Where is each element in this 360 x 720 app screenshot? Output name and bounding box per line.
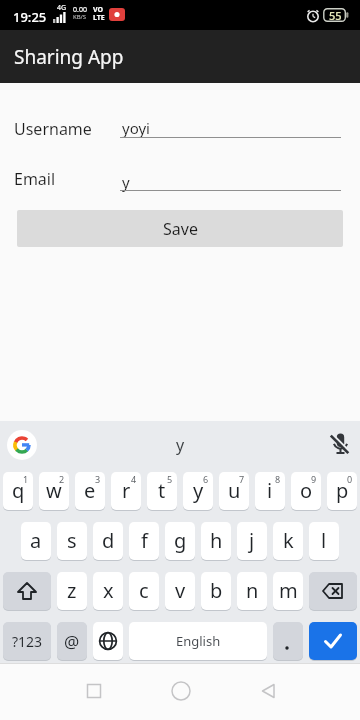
- staticText: c: [139, 577, 149, 604]
- button[interactable]: o: [291, 472, 321, 510]
- button[interactable]: ?123: [3, 622, 51, 660]
- staticText: 3: [95, 473, 101, 485]
- button[interactable]: [309, 572, 357, 610]
- button[interactable]: i: [255, 472, 285, 510]
- button[interactable]: [309, 622, 357, 660]
- button[interactable]: x: [93, 572, 123, 610]
- staticText: 8: [275, 473, 281, 485]
- staticText: 0.00: [73, 5, 87, 15]
- button[interactable]: a: [21, 522, 51, 560]
- staticText: 7: [239, 473, 245, 485]
- staticText: 19:25: [13, 8, 47, 26]
- button[interactable]: j: [237, 522, 267, 560]
- button[interactable]: r: [111, 472, 141, 510]
- button[interactable]: [167, 677, 195, 705]
- staticText: ?123: [12, 632, 43, 651]
- staticText: 0: [347, 473, 353, 485]
- staticText: n: [246, 577, 259, 604]
- button[interactable]: p: [327, 472, 357, 510]
- staticText: q: [12, 477, 25, 504]
- staticText: t: [158, 477, 166, 504]
- button[interactable]: [93, 622, 123, 660]
- button[interactable]: h: [201, 522, 231, 560]
- button[interactable]: [273, 622, 303, 660]
- staticText: i: [267, 477, 273, 504]
- staticText: 4: [131, 473, 137, 485]
- staticText: VO: [93, 5, 104, 15]
- staticText: z: [67, 577, 77, 604]
- button[interactable]: m: [273, 572, 303, 610]
- staticText: g: [174, 527, 187, 554]
- button[interactable]: f: [129, 522, 159, 560]
- staticText: 55: [329, 8, 342, 23]
- staticText: x: [103, 577, 114, 604]
- button[interactable]: z: [57, 572, 87, 610]
- staticText: Email: [14, 168, 56, 190]
- button[interactable]: e: [75, 472, 105, 510]
- button[interactable]: w: [39, 472, 69, 510]
- button[interactable]: [254, 677, 282, 705]
- staticText: 9: [311, 473, 317, 485]
- staticText: 4G: [57, 3, 67, 13]
- staticText: s: [67, 527, 77, 554]
- staticText: Username: [14, 118, 92, 140]
- staticText: a: [30, 527, 42, 554]
- button[interactable]: [7, 430, 37, 460]
- button[interactable]: [329, 433, 351, 455]
- button[interactable]: y: [120, 162, 342, 192]
- button[interactable]: Save: [17, 210, 343, 247]
- staticText: v: [175, 577, 186, 604]
- staticText: d: [102, 527, 115, 554]
- staticText: y: [176, 434, 185, 456]
- staticText: k: [283, 527, 294, 554]
- staticText: p: [336, 477, 349, 504]
- staticText: e: [84, 477, 96, 504]
- button[interactable]: b: [201, 572, 231, 610]
- staticText: o: [300, 477, 313, 504]
- button[interactable]: @: [57, 622, 87, 660]
- button[interactable]: k: [273, 522, 303, 560]
- staticText: h: [210, 527, 223, 554]
- button[interactable]: q: [3, 472, 33, 510]
- button[interactable]: u: [219, 472, 249, 510]
- staticText: b: [210, 577, 223, 604]
- staticText: KB/S: [73, 13, 87, 21]
- button[interactable]: yoyi: [120, 112, 342, 142]
- staticText: r: [122, 477, 131, 504]
- staticText: m: [279, 577, 298, 604]
- staticText: y: [193, 477, 204, 504]
- button[interactable]: c: [129, 572, 159, 610]
- button[interactable]: g: [165, 522, 195, 560]
- staticText: l: [321, 527, 327, 554]
- staticText: yoyi: [122, 118, 150, 138]
- button[interactable]: v: [165, 572, 195, 610]
- staticText: u: [228, 477, 241, 504]
- staticText: y: [122, 172, 130, 192]
- staticText: j: [249, 527, 255, 554]
- staticText: 5: [167, 473, 173, 485]
- staticText: 1: [23, 473, 29, 485]
- button[interactable]: d: [93, 522, 123, 560]
- button[interactable]: y: [120, 433, 240, 457]
- button[interactable]: n: [237, 572, 267, 610]
- staticText: 2: [59, 473, 65, 485]
- button[interactable]: s: [57, 522, 87, 560]
- staticText: 6: [203, 473, 209, 485]
- staticText: Sharing App: [14, 44, 124, 70]
- button[interactable]: [3, 572, 51, 610]
- staticText: English: [176, 632, 221, 650]
- staticText: LTE: [93, 13, 105, 23]
- button[interactable]: l: [309, 522, 339, 560]
- staticText: f: [141, 527, 148, 554]
- staticText: @: [64, 630, 80, 653]
- button[interactable]: t: [147, 472, 177, 510]
- staticText: w: [46, 477, 62, 504]
- staticText: Save: [163, 218, 198, 240]
- button[interactable]: English: [129, 622, 267, 660]
- button[interactable]: [80, 677, 108, 705]
- button[interactable]: y: [183, 472, 213, 510]
